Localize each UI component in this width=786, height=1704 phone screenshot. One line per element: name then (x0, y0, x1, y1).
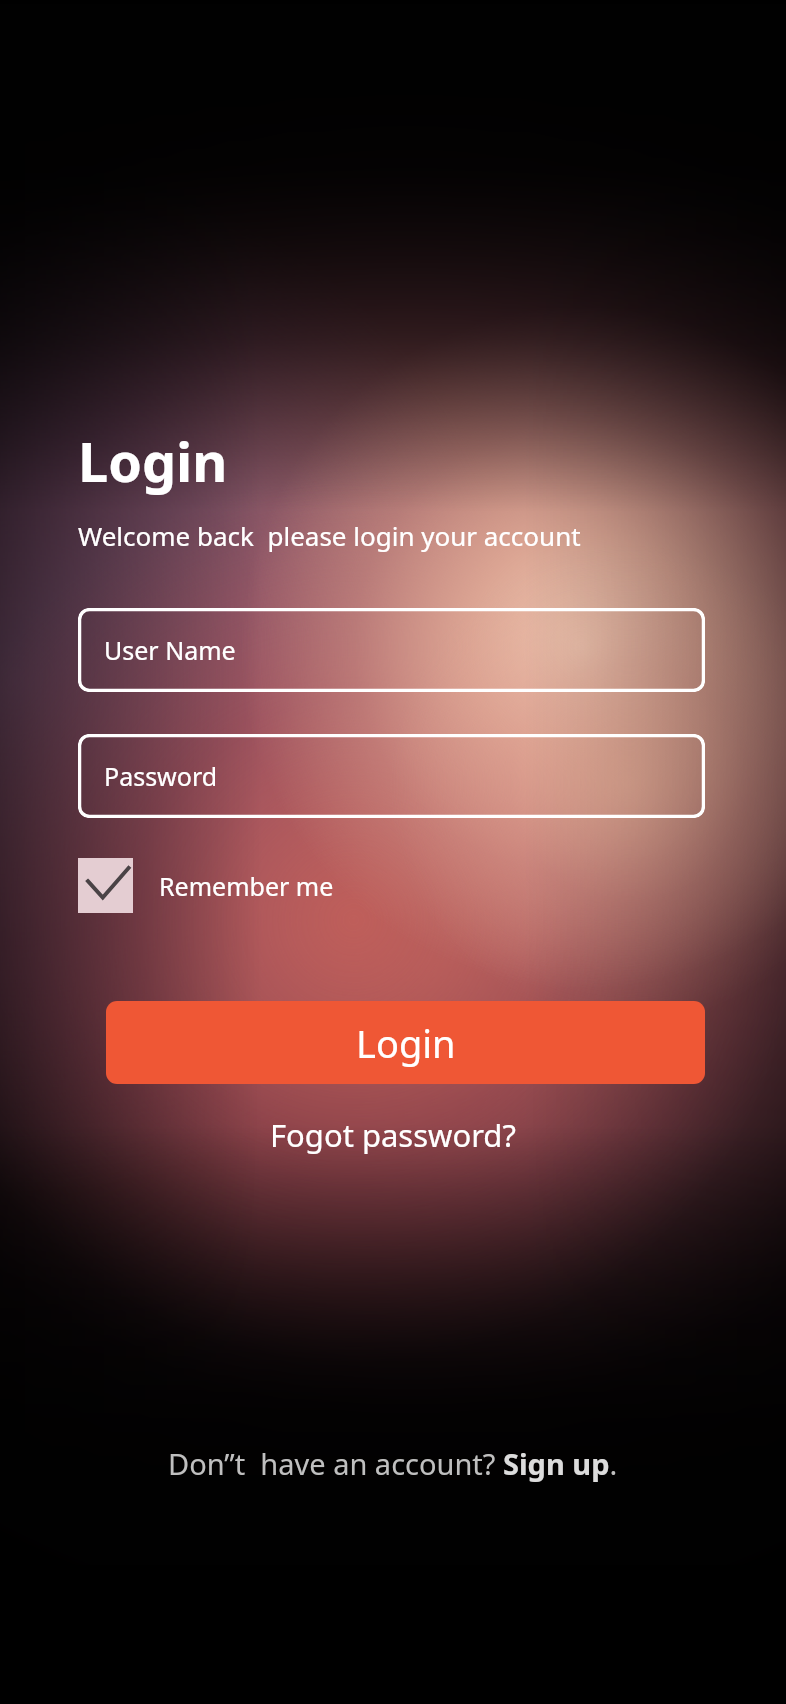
staticText: Fogot password? (270, 1114, 516, 1156)
staticText: User Name (104, 633, 236, 667)
button[interactable]: Remember me (78, 858, 334, 913)
staticText: Login (78, 424, 228, 498)
button[interactable]: Password (78, 734, 705, 818)
staticText: Remember me (159, 869, 334, 903)
button[interactable]: Login (106, 1001, 705, 1084)
button[interactable]: Fogot password? (258, 1108, 528, 1162)
staticText: Login (356, 1017, 456, 1069)
staticText: Password (104, 759, 218, 793)
staticText: Welcome back please login your account (78, 518, 581, 553)
button[interactable]: Don”t have an account? Sign up. (158, 1438, 628, 1489)
staticText: Don”t have an account? Sign up. (168, 1444, 618, 1483)
button[interactable]: User Name (78, 608, 705, 692)
